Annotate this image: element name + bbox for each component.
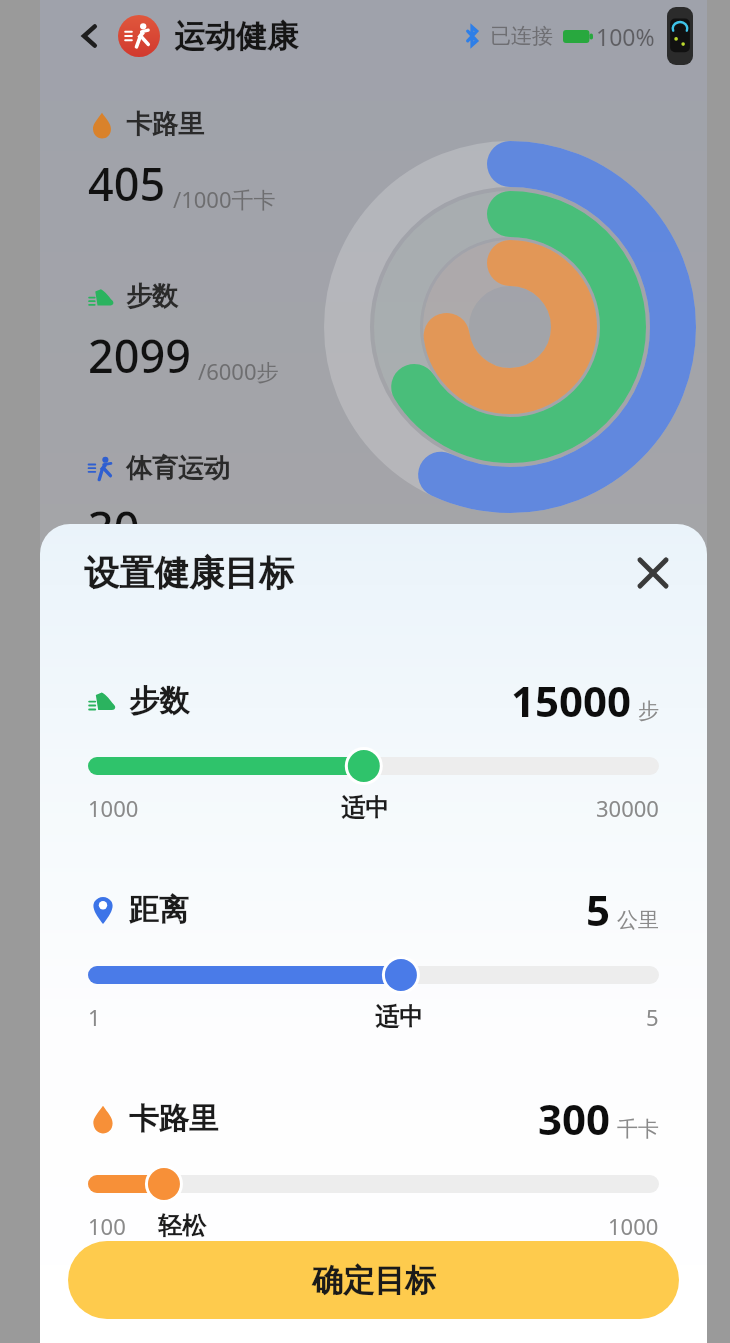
staticText: 已连接 (490, 23, 553, 49)
staticText: 适中 (375, 1002, 423, 1032)
staticText: 1000 (88, 793, 139, 823)
button[interactable]: 确定目标 (68, 1241, 679, 1319)
other: Bluetooth (460, 24, 484, 48)
staticText: 15000 (511, 672, 632, 729)
staticText: 体育运动 (126, 452, 230, 485)
staticText: 运动健康 (174, 17, 298, 56)
staticText: 设置健康目标 (84, 551, 294, 595)
staticText: 300 (538, 1090, 611, 1147)
staticText: 适中 (341, 793, 389, 823)
staticText: 30 (88, 497, 140, 558)
staticText: 步数 (126, 280, 178, 313)
staticText: 确定目标 (312, 1261, 436, 1300)
staticText: 步数 (129, 682, 189, 720)
button[interactable]: Close (625, 545, 681, 601)
staticText: 轻松 (158, 1211, 206, 1241)
staticText: 405 (88, 153, 166, 214)
staticText: 卡路里 (129, 1100, 219, 1138)
staticText: /60分钟 (147, 528, 225, 558)
button[interactable]: Device (667, 7, 693, 65)
staticText: 步 (638, 698, 659, 724)
staticText: /6000步 (198, 356, 279, 386)
staticText: 100 (88, 1211, 126, 1241)
staticText: 5 (646, 1002, 659, 1032)
button[interactable] (88, 749, 659, 783)
staticText: 公里 (617, 907, 659, 933)
button[interactable] (88, 1167, 659, 1201)
staticText: /1000千卡 (173, 184, 276, 214)
staticText: 30000 (596, 793, 659, 823)
staticText: 距离 (129, 891, 189, 929)
staticText: 100% (596, 21, 655, 52)
staticText: 卡路里 (126, 108, 204, 141)
staticText: 1 (88, 1002, 101, 1032)
staticText: 2099 (88, 325, 191, 386)
button[interactable] (88, 958, 659, 992)
staticText: 5 (586, 881, 611, 938)
button[interactable]: Back (68, 14, 112, 58)
staticText: 1000 (608, 1211, 659, 1241)
staticText: 千卡 (617, 1116, 659, 1142)
